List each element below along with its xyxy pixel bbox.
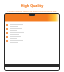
button[interactable] [6, 35, 58, 39]
button[interactable] [6, 23, 58, 27]
staticText: High Quality [0, 3, 64, 8]
button[interactable] [6, 27, 58, 31]
staticText: Lorem ipsum dolor sit amet consectetur e… [0, 9, 64, 12]
button[interactable] [6, 31, 58, 35]
button[interactable] [6, 39, 58, 43]
